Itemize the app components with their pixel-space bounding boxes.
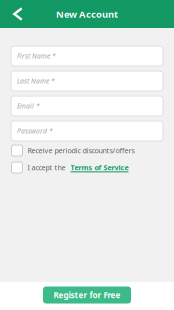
staticText: Password * [17,126,53,136]
button[interactable]: Back [0,0,27,28]
button[interactable]: Register for Free [43,286,131,303]
staticText: I accept the [27,163,65,172]
staticText: Receive periodic discounts/offers [27,146,134,155]
staticText: New Account [56,8,118,20]
button[interactable]: Receive periodic discounts/offers [10,145,163,156]
staticText: Email * [17,101,40,111]
button[interactable]: I accept the [10,162,163,173]
staticText: First Name * [17,51,56,61]
staticText: Last Name * [17,76,55,86]
staticText: Terms of Service [70,163,128,172]
staticText: Register for Free [53,289,120,301]
